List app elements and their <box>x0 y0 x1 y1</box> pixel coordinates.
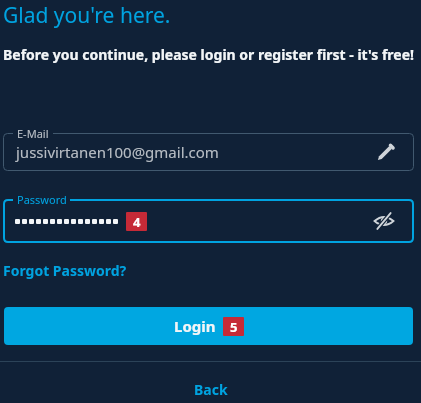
staticText: Login <box>174 316 216 336</box>
staticText: jussivirtanen100@gmail.com <box>16 142 219 162</box>
button[interactable]: Edit e-mail <box>370 137 400 167</box>
button[interactable]: Show password <box>369 206 399 236</box>
staticText: 4 <box>133 213 141 231</box>
button[interactable]: Forgot Password? <box>3 261 127 280</box>
staticText: Back <box>194 380 228 399</box>
staticText: 5 <box>230 318 238 336</box>
staticText: Before you continue, please login or reg… <box>3 45 414 64</box>
button[interactable]: Login <box>4 307 413 345</box>
staticText: Password <box>17 192 67 207</box>
staticText: E-Mail <box>17 126 49 141</box>
staticText: Forgot Password? <box>3 261 127 280</box>
staticText: Glad you're here. <box>3 1 171 30</box>
button[interactable]: Back <box>0 376 421 403</box>
